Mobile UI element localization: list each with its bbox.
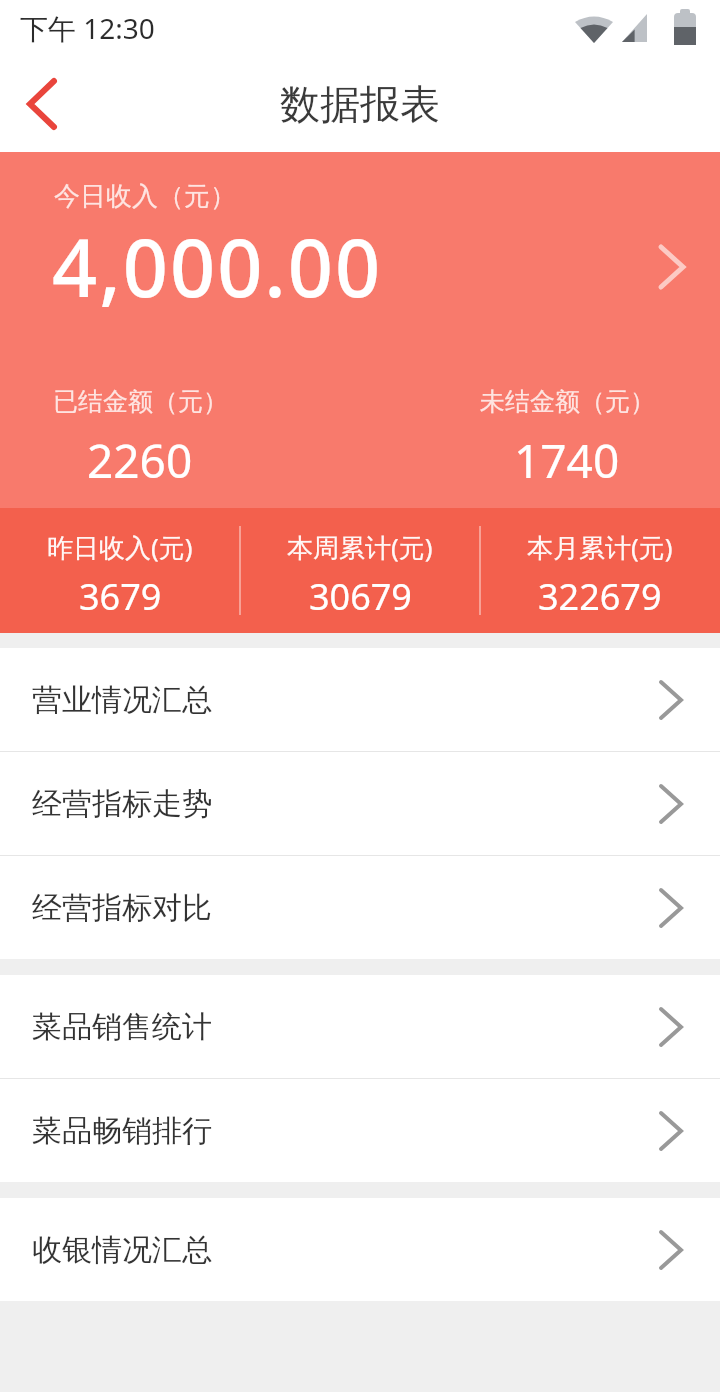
button[interactable]: 营业情况汇总 xyxy=(0,648,720,751)
staticText: 昨日收入(元) xyxy=(47,529,193,565)
staticText: 1740 xyxy=(514,429,620,492)
button[interactable]: 本月累计(元) xyxy=(480,508,720,621)
staticText: 30679 xyxy=(309,572,412,621)
staticText: 数据报表 xyxy=(280,79,440,129)
button[interactable] xyxy=(14,72,70,136)
staticText: 322679 xyxy=(538,572,662,621)
staticText: 3679 xyxy=(79,572,162,621)
staticText: 菜品销售统计 xyxy=(32,1008,212,1046)
staticText: 营业情况汇总 xyxy=(32,681,212,719)
button[interactable]: 收银情况汇总 xyxy=(0,1198,720,1301)
button[interactable]: 经营指标对比 xyxy=(0,856,720,959)
staticText: 下午 12:30 xyxy=(20,9,155,47)
button[interactable]: 经营指标走势 xyxy=(0,752,720,855)
button[interactable]: 今日收入（元） xyxy=(0,152,720,508)
staticText: 4,000.00 xyxy=(52,213,383,321)
staticText: 已结金额（元） xyxy=(53,386,228,417)
staticText: 今日收入（元） xyxy=(54,180,236,213)
staticText: 本月累计(元) xyxy=(527,529,673,565)
button[interactable]: 本周累计(元) xyxy=(240,508,480,621)
button[interactable]: 菜品销售统计 xyxy=(0,975,720,1078)
staticText: 2260 xyxy=(87,429,193,492)
staticText: 菜品畅销排行 xyxy=(32,1112,212,1150)
staticText: 收银情况汇总 xyxy=(32,1231,212,1269)
button[interactable]: 昨日收入(元) xyxy=(0,508,240,621)
staticText: 经营指标对比 xyxy=(32,889,212,927)
button[interactable]: 菜品畅销排行 xyxy=(0,1079,720,1182)
staticText: 本周累计(元) xyxy=(287,529,433,565)
staticText: 未结金额（元） xyxy=(480,386,655,417)
staticText: 经营指标走势 xyxy=(32,785,212,823)
